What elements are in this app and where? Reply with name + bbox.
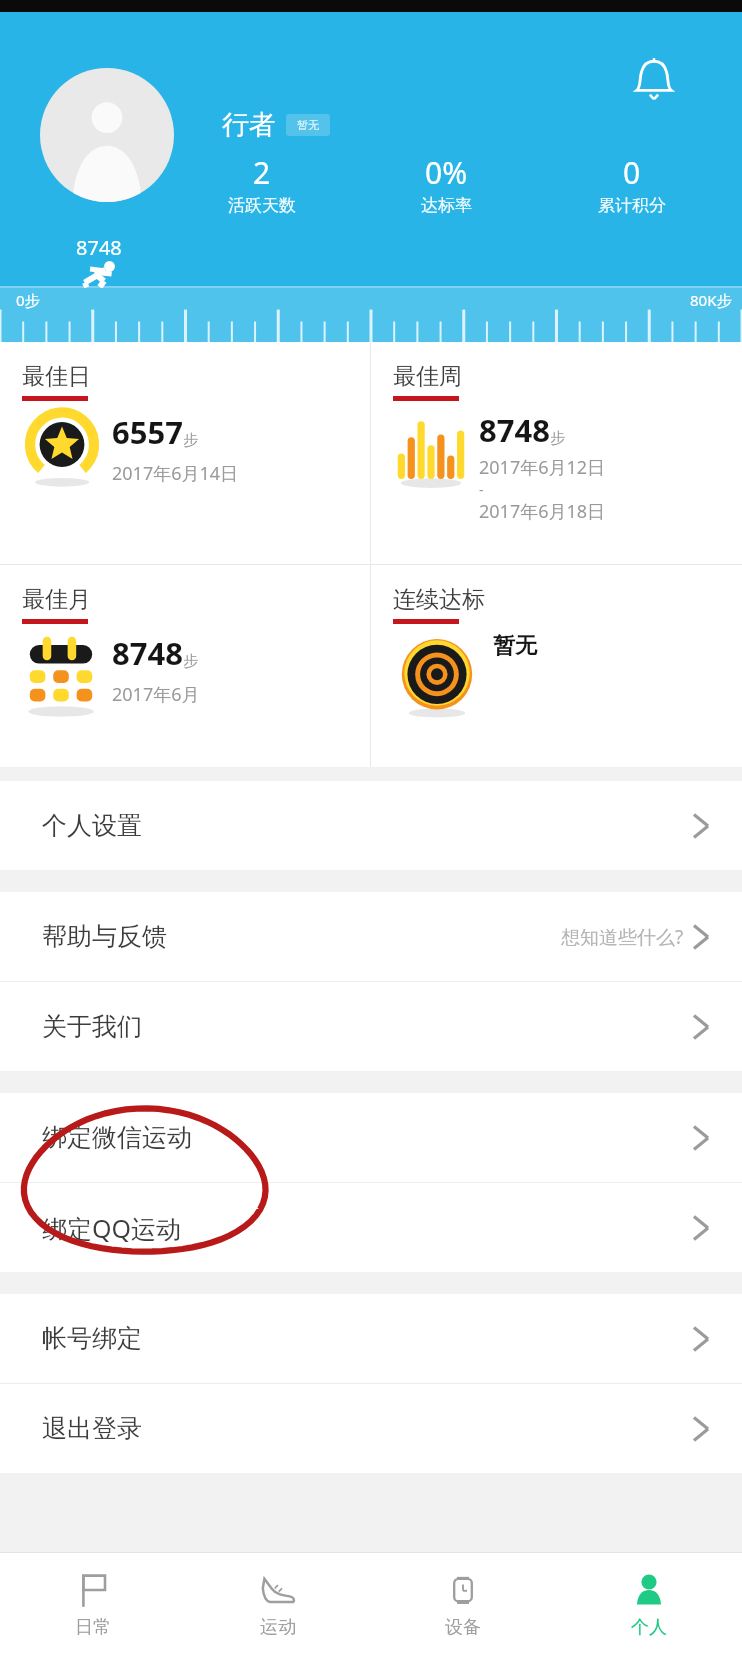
staticText: 个人设置 xyxy=(42,810,142,841)
button[interactable]: 绑定QQ运动 xyxy=(0,1183,742,1272)
button[interactable]: 退出登录 xyxy=(0,1384,742,1473)
button[interactable]: 设备 xyxy=(370,1553,556,1656)
staticText: 帮助与反馈 xyxy=(42,921,167,952)
button[interactable]: 帐号绑定 xyxy=(0,1294,742,1383)
staticText: 0 xyxy=(623,152,641,193)
staticText: 2017年6月14日 xyxy=(112,461,239,486)
button[interactable]: 关于我们 xyxy=(0,982,742,1071)
button[interactable]: 最佳月 xyxy=(0,565,370,767)
staticText: 0步 xyxy=(16,290,40,310)
button[interactable]: 个人设置 xyxy=(0,781,742,870)
staticText: 2017年6月12日 xyxy=(479,455,606,480)
staticText: 2017年6月18日 xyxy=(479,499,606,524)
staticText: 最佳日 xyxy=(22,362,91,391)
staticText: 2 xyxy=(253,152,271,193)
staticText: 步 xyxy=(183,431,198,450)
staticText: 步 xyxy=(183,652,198,671)
staticText: 6557 xyxy=(112,411,183,453)
staticText: 8748 xyxy=(479,409,550,451)
staticText: 行者 xyxy=(222,108,276,142)
staticText: 运动 xyxy=(260,1616,296,1639)
button[interactable]: 运动 xyxy=(185,1553,370,1656)
staticText: - xyxy=(479,480,484,499)
staticText: 想知道些什么? xyxy=(561,924,684,950)
staticText: 退出登录 xyxy=(42,1413,142,1444)
staticText: 0% xyxy=(425,152,468,193)
staticText: 暂无 xyxy=(493,632,537,660)
staticText: 暂无 xyxy=(297,118,319,132)
staticText: 帐号绑定 xyxy=(42,1323,142,1354)
button[interactable]: 帮助与反馈 xyxy=(0,892,742,981)
button[interactable]: 个人 xyxy=(556,1553,742,1656)
staticText: 8748 xyxy=(76,234,122,261)
button[interactable]: Avatar xyxy=(40,68,174,202)
button[interactable]: 最佳日 xyxy=(0,342,370,564)
staticText: 绑定QQ运动 xyxy=(42,1211,182,1245)
button[interactable]: 最佳周 xyxy=(371,342,742,564)
staticText: 80K步 xyxy=(690,290,732,310)
button[interactable]: 日常 xyxy=(0,1553,185,1656)
staticText: 个人 xyxy=(631,1616,667,1639)
staticText: 最佳月 xyxy=(22,585,91,614)
staticText: 步 xyxy=(550,429,565,448)
staticText: 连续达标 xyxy=(393,585,485,614)
staticText: 8748 xyxy=(112,632,183,674)
staticText: 达标率 xyxy=(421,195,472,216)
staticText: 2017年6月 xyxy=(112,682,200,707)
staticText: 日常 xyxy=(75,1616,111,1639)
button[interactable]: 绑定微信运动 xyxy=(0,1093,742,1182)
staticText: 关于我们 xyxy=(42,1011,142,1042)
button[interactable]: Notifications xyxy=(628,54,680,106)
staticText: 绑定微信运动 xyxy=(42,1122,192,1153)
button[interactable]: 连续达标 xyxy=(371,565,742,767)
staticText: 设备 xyxy=(445,1616,481,1639)
staticText: 活跃天数 xyxy=(228,195,296,216)
staticText: 最佳周 xyxy=(393,362,462,391)
staticText: 累计积分 xyxy=(598,195,666,216)
